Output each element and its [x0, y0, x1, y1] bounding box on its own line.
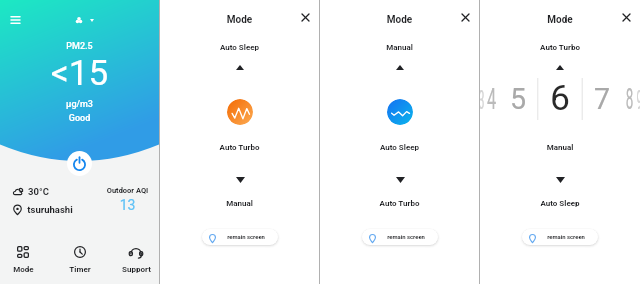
staticText: Manual [480, 143, 640, 152]
staticText: Mode [13, 265, 34, 274]
staticText: 5 [509, 81, 526, 117]
staticText: remain screen [387, 234, 425, 241]
button[interactable]: Previous mode [550, 57, 570, 77]
staticText: Manual [320, 43, 479, 52]
staticText: PM2.5 [0, 41, 159, 52]
button[interactable]: Mode [0, 240, 49, 280]
button[interactable]: Timer [54, 240, 106, 280]
button[interactable]: Close [616, 7, 636, 27]
button[interactable]: Auto Sleep [387, 99, 413, 125]
staticText: remain screen [227, 234, 265, 241]
button[interactable]: Next mode [390, 170, 410, 190]
button[interactable]: Power [67, 151, 92, 176]
staticText: Support [122, 265, 151, 274]
button[interactable]: remain screen [362, 229, 438, 245]
button[interactable]: remain screen [202, 229, 278, 245]
staticText: <15 [0, 53, 159, 94]
button[interactable]: Previous mode [230, 57, 250, 77]
staticText: Auto Turbo [320, 199, 479, 208]
button[interactable]: Next mode [230, 170, 250, 190]
staticText: Auto Sleep [160, 43, 319, 52]
staticText: 13 [96, 197, 159, 213]
staticText: Auto Turbo [480, 43, 640, 52]
staticText: Manual [160, 199, 319, 208]
staticText: 7 [593, 81, 610, 117]
button[interactable]: remain screen [522, 229, 598, 245]
button[interactable]: Previous mode [390, 57, 410, 77]
button[interactable]: Close [295, 7, 315, 27]
button[interactable]: Menu [4, 9, 26, 31]
staticText: Auto Sleep [320, 143, 479, 152]
staticText: Auto Sleep [480, 199, 640, 208]
staticText: 30°C [28, 186, 49, 197]
button[interactable]: Select device [76, 17, 94, 23]
button[interactable]: Close [455, 7, 475, 27]
staticText: µg/m3 [0, 99, 159, 110]
button[interactable]: Auto Turbo [227, 99, 253, 125]
button[interactable]: Support [110, 240, 162, 280]
staticText: Mode [480, 14, 640, 26]
staticText: tsuruhashi [27, 204, 73, 215]
staticText: 6 [550, 78, 570, 118]
staticText: 9 [636, 85, 640, 115]
button[interactable]: Next mode [550, 170, 570, 190]
staticText: 8 [625, 82, 633, 116]
staticText: Mode [160, 14, 319, 26]
staticText: Outdoor AQI [96, 186, 159, 195]
staticText: 3 [480, 85, 484, 115]
staticText: Timer [69, 265, 91, 274]
staticText: Mode [320, 14, 479, 26]
staticText: Auto Turbo [160, 143, 319, 152]
staticText: remain screen [547, 234, 585, 241]
staticText: Good [0, 113, 159, 124]
staticText: 4 [487, 82, 496, 116]
